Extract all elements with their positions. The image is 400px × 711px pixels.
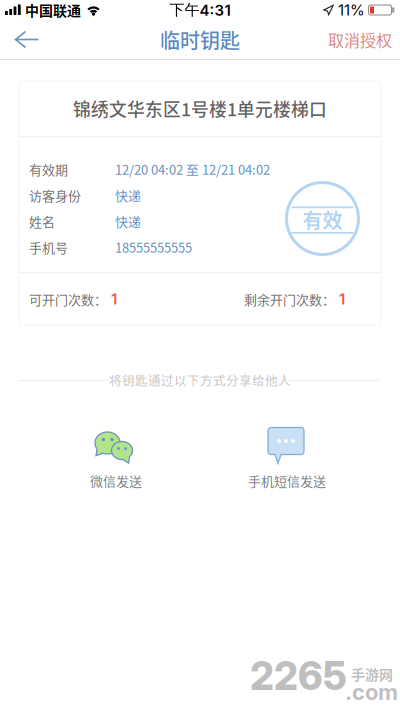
staticText: 取消授权 [328,28,392,51]
staticText: 手机号 [29,238,68,256]
staticText: 姓名 [29,212,55,230]
staticText: .com [345,679,398,705]
button[interactable]: 微信发送 [56,429,176,491]
staticText: 手游网 [351,664,393,684]
staticText: 访客身份 [29,186,81,204]
button[interactable]: 手机短信发送 [227,429,347,491]
staticText: 可开门次数： [29,290,107,308]
staticText: 18555555555 [115,238,192,256]
staticText: 临时钥匙 [160,25,240,54]
staticText: 剩余开门次数： [244,290,335,308]
staticText: 有效期 [29,160,68,178]
staticText: 中国联通 [25,0,81,20]
staticText: 11% [338,1,365,19]
staticText: 有效 [302,205,342,234]
staticText: 1 [111,290,117,308]
button[interactable]: 取消授权 [320,20,400,59]
staticText: 锦绣文华东区1号楼1单元楼梯口 [73,96,327,121]
staticText: 1 [339,290,345,308]
staticText: 下午4:31 [169,1,230,19]
button[interactable]: 返回 [0,20,54,59]
staticText: 微信发送 [90,471,142,490]
staticText: 2265 [250,653,347,699]
staticText: 12/20 04:02 至 12/21 04:02 [115,160,270,178]
staticText: 手机短信发送 [248,471,326,490]
staticText: 将钥匙通过以下方式分享给他人 [109,371,291,389]
staticText: 快递 [115,212,141,230]
staticText: 快递 [115,186,141,204]
